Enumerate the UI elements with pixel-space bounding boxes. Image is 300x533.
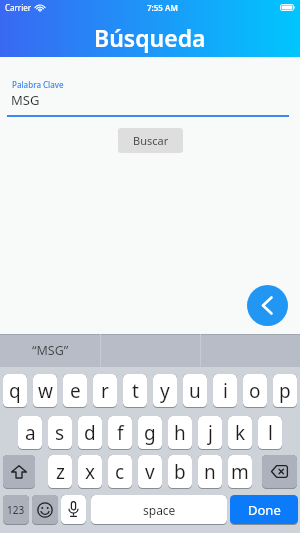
staticText: p bbox=[279, 378, 291, 404]
button[interactable]: w bbox=[33, 374, 57, 407]
staticText: space bbox=[143, 502, 176, 518]
button[interactable]: c bbox=[108, 455, 132, 488]
staticText: m bbox=[231, 459, 249, 485]
button[interactable]: o bbox=[243, 374, 267, 407]
staticText: l bbox=[268, 420, 273, 446]
button[interactable]: u bbox=[183, 374, 207, 407]
staticText: b bbox=[174, 459, 186, 485]
staticText: e bbox=[70, 378, 81, 404]
staticText: a bbox=[25, 420, 36, 446]
staticText: Buscar bbox=[133, 133, 169, 148]
button[interactable] bbox=[262, 455, 297, 488]
button[interactable]: y bbox=[153, 374, 177, 407]
button[interactable]: “MSG” bbox=[0, 334, 100, 367]
button[interactable] bbox=[32, 495, 58, 524]
button[interactable]: s bbox=[48, 416, 72, 449]
button[interactable]: e bbox=[63, 374, 87, 407]
staticText: s bbox=[55, 420, 65, 446]
staticText: Búsqueda bbox=[94, 22, 206, 53]
button[interactable]: g bbox=[138, 416, 162, 449]
staticText: 123 bbox=[7, 503, 25, 517]
staticText: x bbox=[85, 459, 96, 485]
staticText: g bbox=[144, 420, 156, 446]
button[interactable]: h bbox=[168, 416, 192, 449]
staticText: u bbox=[189, 378, 201, 404]
button[interactable]: n bbox=[198, 455, 222, 488]
staticText: k bbox=[235, 420, 246, 446]
staticText: MSG bbox=[11, 91, 40, 109]
staticText: “MSG” bbox=[32, 342, 69, 359]
button[interactable]: i bbox=[213, 374, 237, 407]
button[interactable]: z bbox=[48, 455, 72, 488]
button[interactable]: d bbox=[78, 416, 102, 449]
button[interactable]: x bbox=[78, 455, 102, 488]
staticText: r bbox=[101, 378, 109, 404]
button[interactable] bbox=[247, 285, 288, 326]
staticText: z bbox=[56, 459, 65, 485]
staticText: y bbox=[160, 378, 170, 404]
button[interactable]: space bbox=[91, 495, 227, 524]
button[interactable]: f bbox=[108, 416, 132, 449]
staticText: i bbox=[223, 378, 228, 404]
button[interactable] bbox=[61, 495, 86, 524]
button[interactable]: k bbox=[228, 416, 252, 449]
button[interactable]: p bbox=[273, 374, 297, 407]
staticText: q bbox=[9, 378, 21, 404]
button[interactable]: v bbox=[138, 455, 162, 488]
button[interactable]: m bbox=[228, 455, 252, 488]
button[interactable]: t bbox=[123, 374, 147, 407]
button[interactable]: 123 bbox=[3, 495, 29, 524]
button[interactable]: Buscar bbox=[118, 128, 183, 153]
button[interactable]: q bbox=[3, 374, 27, 407]
staticText: d bbox=[84, 420, 96, 446]
button[interactable]: Done bbox=[230, 495, 298, 524]
staticText: o bbox=[249, 378, 261, 404]
staticText: j bbox=[208, 420, 213, 446]
staticText: c bbox=[115, 459, 125, 485]
staticText: 7:55 AM bbox=[147, 2, 178, 13]
staticText: w bbox=[38, 378, 53, 404]
button[interactable] bbox=[3, 455, 35, 488]
button[interactable]: r bbox=[93, 374, 117, 407]
staticText: f bbox=[117, 420, 124, 446]
button[interactable]: a bbox=[18, 416, 42, 449]
staticText: h bbox=[174, 420, 186, 446]
staticText: v bbox=[145, 459, 155, 485]
staticText: n bbox=[204, 459, 216, 485]
button[interactable]: b bbox=[168, 455, 192, 488]
staticText: Carrier bbox=[5, 2, 32, 13]
button[interactable]: l bbox=[258, 416, 282, 449]
staticText: t bbox=[132, 378, 139, 404]
staticText: Done bbox=[248, 501, 281, 519]
staticText: Palabra Clave bbox=[12, 79, 64, 90]
button[interactable]: j bbox=[198, 416, 222, 449]
